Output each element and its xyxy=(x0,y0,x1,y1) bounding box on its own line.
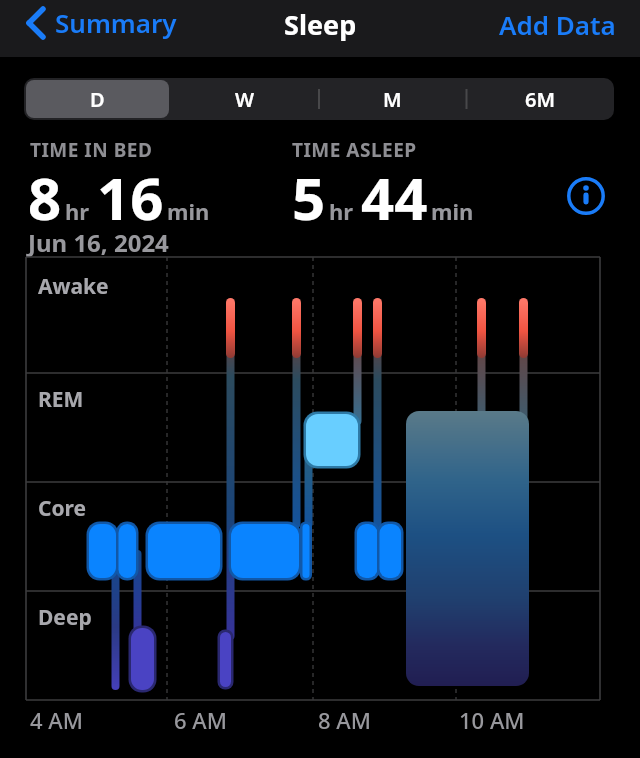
staticText: 6M xyxy=(525,86,556,113)
staticText: 44 xyxy=(361,158,428,237)
button[interactable]: 6M xyxy=(466,78,614,120)
staticText: Awake xyxy=(38,272,109,301)
button[interactable]: M xyxy=(318,78,466,120)
staticText: 5 xyxy=(292,158,326,237)
staticText: 10 AM xyxy=(459,705,525,735)
staticText: M xyxy=(383,86,402,113)
staticText: hr xyxy=(329,196,354,226)
staticText: min xyxy=(167,196,210,226)
staticText: Core xyxy=(38,494,87,523)
button[interactable]: Add Data xyxy=(499,7,616,42)
staticText: hr xyxy=(65,196,90,226)
staticText: Jun 16, 2024 xyxy=(28,226,169,259)
staticText: 6 AM xyxy=(174,705,227,735)
staticText: TIME ASLEEP xyxy=(292,137,417,163)
button[interactable]: D xyxy=(26,80,169,118)
staticText: Summary xyxy=(55,5,177,40)
staticText: 8 AM xyxy=(318,705,371,735)
staticText: TIME IN BED xyxy=(30,137,153,163)
staticText: Add Data xyxy=(499,7,616,42)
staticText: D xyxy=(90,86,105,113)
staticText: 4 AM xyxy=(30,705,83,735)
button[interactable]: W xyxy=(171,78,318,120)
staticText: Sleep xyxy=(284,6,357,43)
staticText: 8 xyxy=(28,158,62,237)
staticText: REM xyxy=(38,385,84,414)
button[interactable] xyxy=(566,176,606,216)
button[interactable]: Summary xyxy=(24,5,180,40)
staticText: Deep xyxy=(38,603,92,632)
staticText: min xyxy=(431,196,474,226)
staticText: W xyxy=(235,86,255,113)
staticText: 16 xyxy=(97,158,164,237)
